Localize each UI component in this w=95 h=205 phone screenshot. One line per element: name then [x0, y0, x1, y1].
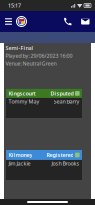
button[interactable]: Call: [59, 11, 77, 32]
staticText: Kilmoney: [8, 151, 32, 158]
staticText: Semi-Final: [5, 44, 33, 52]
staticText: 15:17: [8, 2, 21, 9]
button[interactable]: Menu: [1, 11, 16, 32]
staticText: Josh Brooks: [52, 160, 80, 167]
staticText: Sean Barry: [54, 98, 80, 105]
button[interactable]: Kilmoney: [6, 150, 82, 180]
button[interactable]: Mail: [77, 11, 94, 32]
button[interactable]: Kingscourt: [6, 89, 82, 118]
staticText: Registered: [46, 151, 73, 158]
staticText: Disputed: [50, 90, 73, 97]
staticText: Jim Jackie: [8, 160, 30, 167]
staticText: Played by: 29/06/2023 16:00: [5, 52, 72, 59]
staticText: Tommy May: [8, 98, 39, 105]
staticText: Kingscourt: [8, 90, 35, 97]
staticText: Venue: Neutral Green: [5, 60, 56, 67]
